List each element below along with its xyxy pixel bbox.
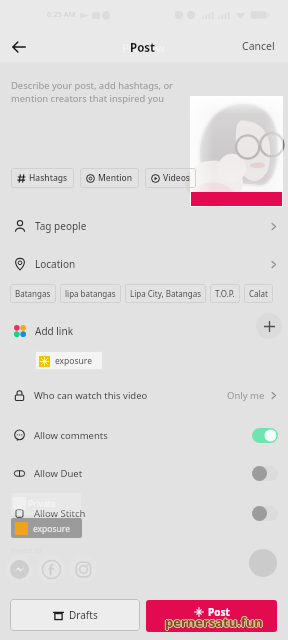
button[interactable]: Lipa City, Batangas xyxy=(125,284,206,303)
button[interactable]: Toggle xyxy=(252,506,278,521)
button[interactable]: Messenger xyxy=(5,555,33,583)
staticText: Lipa City, Batangas xyxy=(130,288,201,299)
staticText: Preview xyxy=(122,40,165,56)
staticText: Who can watch this video xyxy=(34,389,148,402)
button[interactable]: lipa batangas xyxy=(60,284,121,303)
staticText: pernersatu.fun xyxy=(165,612,263,630)
staticText: exposure xyxy=(55,355,92,367)
staticText: Hashtags xyxy=(29,172,68,184)
button[interactable]: Who can watch this video xyxy=(0,383,288,407)
button[interactable]: Drafts xyxy=(10,599,140,631)
button[interactable]: Mention xyxy=(80,168,139,188)
staticText: Drafts xyxy=(69,608,98,622)
button[interactable]: Toggle xyxy=(252,428,278,443)
staticText: Tag people xyxy=(35,219,87,233)
button[interactable]: Videos xyxy=(145,168,196,188)
button[interactable]: Batangas xyxy=(10,284,56,303)
staticText: T.O.P. xyxy=(215,288,235,299)
staticText: Post xyxy=(208,605,230,619)
staticText: 6:25 AM xyxy=(47,9,76,19)
staticText: pernersatu.fun xyxy=(165,613,263,631)
staticText: Add link xyxy=(35,324,73,338)
staticText: Batangas xyxy=(15,288,51,299)
staticText: Mention xyxy=(98,172,133,184)
staticText: Describe your post, add hashtags, or xyxy=(11,79,173,92)
button[interactable]: Instagram xyxy=(69,555,97,583)
button[interactable]: Allow Stitch xyxy=(0,501,288,525)
button[interactable]: Toggle xyxy=(252,466,278,481)
staticText: exposure xyxy=(33,523,70,535)
staticText: Cancel xyxy=(242,39,275,53)
button[interactable]: Add link xyxy=(256,313,282,339)
button[interactable]: Video preview xyxy=(190,96,283,207)
staticText: Private xyxy=(28,498,56,510)
button[interactable]: Location xyxy=(0,252,288,276)
staticText: Videos xyxy=(163,172,190,184)
button[interactable]: Cancel xyxy=(238,36,279,56)
button[interactable]: Tag people xyxy=(0,214,288,238)
staticText: mention creators that inspired you xyxy=(11,92,164,105)
staticText: Location xyxy=(35,257,76,271)
staticText: pernersatu.fun xyxy=(166,613,264,631)
staticText: pernersatu.fun xyxy=(165,614,263,632)
button[interactable]: Facebook xyxy=(37,555,65,583)
button[interactable]: Allow Duet xyxy=(0,461,288,485)
button[interactable]: T.O.P. xyxy=(210,284,240,303)
button[interactable]: Hashtags xyxy=(11,168,74,188)
staticText: Calat xyxy=(249,288,268,299)
staticText: lipa batangas xyxy=(65,288,116,299)
staticText: Allow comments xyxy=(34,429,108,442)
button[interactable]: More options xyxy=(249,549,277,577)
button[interactable]: Allow comments xyxy=(0,423,288,447)
staticText: Allow Duet xyxy=(34,467,83,480)
button[interactable]: exposure xyxy=(35,351,103,370)
staticText: Allow Stitch xyxy=(34,507,86,520)
staticText: Post xyxy=(130,40,156,56)
staticText: Only me xyxy=(227,389,265,402)
button[interactable]: Calat xyxy=(244,284,273,303)
staticText: pernersatu.fun xyxy=(164,613,262,631)
button[interactable]: Back xyxy=(6,34,31,59)
button[interactable]: Post xyxy=(146,600,277,632)
button[interactable]: Add link xyxy=(0,319,288,343)
